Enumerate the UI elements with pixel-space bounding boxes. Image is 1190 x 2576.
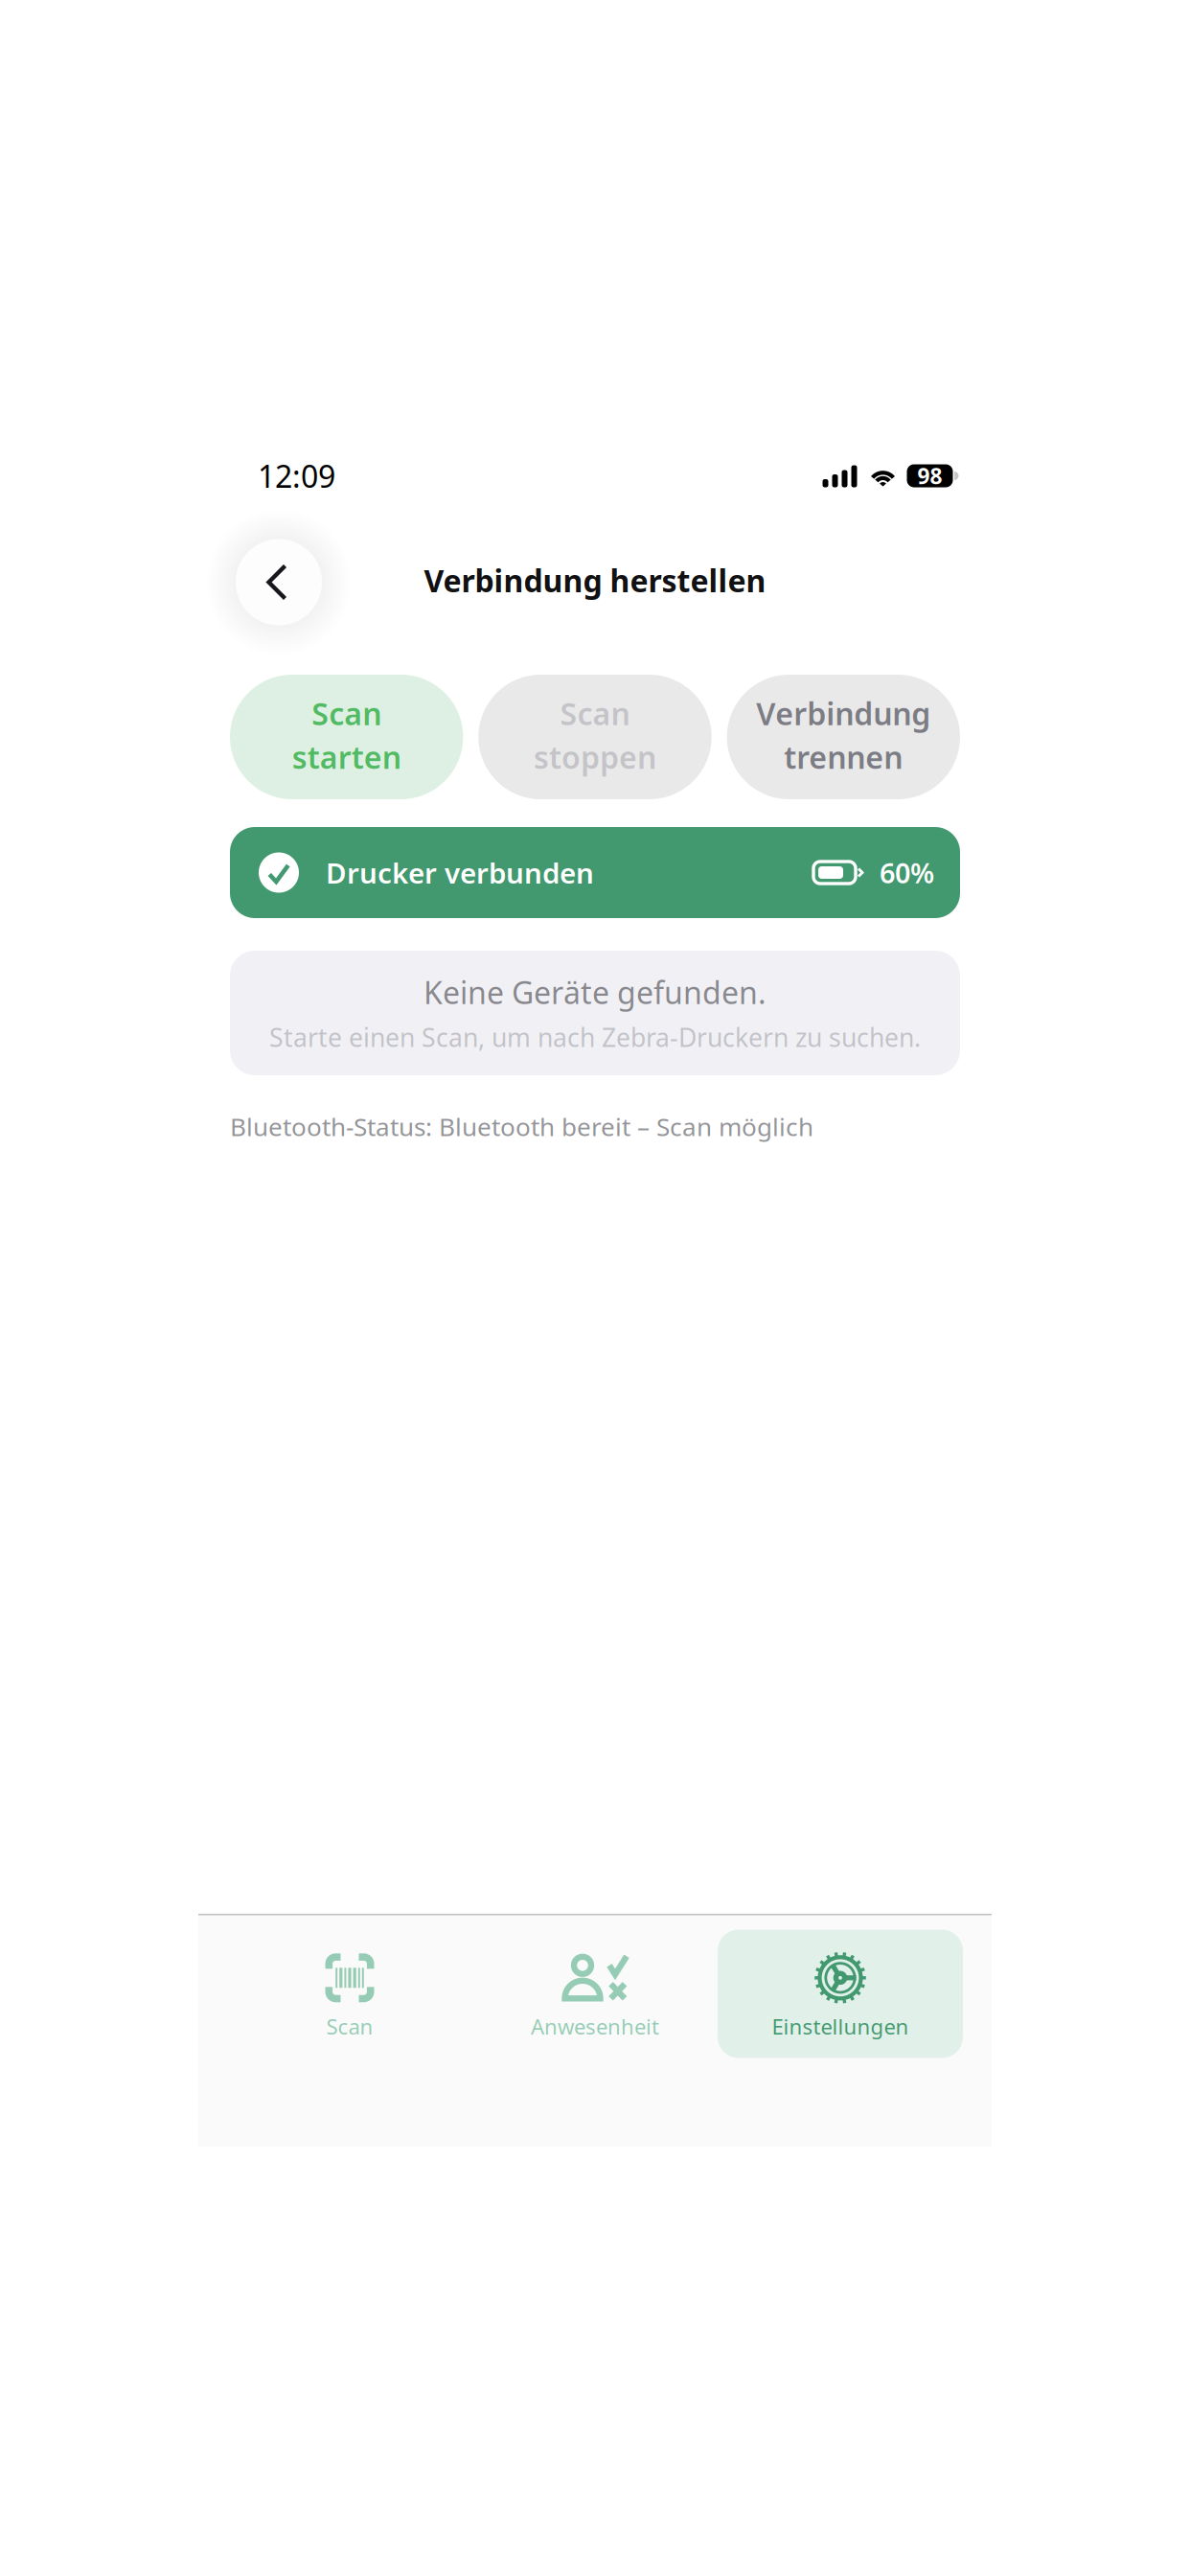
button[interactable]: Verbindung	[727, 675, 960, 799]
staticText: 12:09	[258, 455, 335, 496]
button[interactable]: Anwesenheit	[472, 1930, 718, 2058]
staticText: Scan	[312, 693, 382, 734]
button[interactable]: Scan	[227, 1930, 472, 2058]
staticText: Scan	[326, 2012, 373, 2040]
staticText: Drucker verbunden	[326, 854, 594, 891]
staticText: Anwesenheit	[531, 2012, 659, 2040]
staticText: stoppen	[534, 736, 656, 777]
staticText: Keine Geräte gefunden.	[423, 972, 767, 1013]
staticText: Verbindung	[756, 693, 931, 734]
staticText: Einstellungen	[772, 2012, 909, 2040]
button[interactable]: Scan	[230, 675, 463, 799]
staticText: Scan	[560, 693, 630, 734]
staticText: Bluetooth-Status: Bluetooth bereit – Sca…	[230, 1110, 813, 1143]
button[interactable]: Zurück	[180, 483, 378, 681]
staticText: 60%	[880, 854, 934, 891]
button[interactable]: Scan	[478, 675, 712, 799]
staticText: Verbindung herstellen	[424, 560, 766, 601]
staticText: trennen	[784, 736, 903, 777]
staticText: starten	[292, 736, 401, 777]
staticText: Starte einen Scan, um nach Zebra-Drucker…	[269, 1020, 921, 1054]
staticText: 98	[917, 461, 942, 490]
button[interactable]: Einstellungen	[718, 1930, 963, 2058]
